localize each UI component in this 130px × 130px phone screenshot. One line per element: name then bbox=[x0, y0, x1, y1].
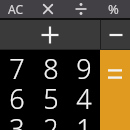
staticText: 2 bbox=[43, 110, 59, 130]
button[interactable]: Divide bbox=[64, 0, 97, 18]
button[interactable]: 2 bbox=[34, 110, 67, 130]
button[interactable]: Equals bbox=[100, 50, 130, 130]
staticText: 3 bbox=[9, 110, 25, 130]
staticText: 8 bbox=[43, 50, 59, 80]
button[interactable]: Plus bbox=[0, 20, 100, 49]
button[interactable]: 5 bbox=[34, 80, 67, 110]
button[interactable]: 7 bbox=[0, 50, 34, 80]
button[interactable]: 1 bbox=[67, 110, 100, 130]
button[interactable]: 6 bbox=[0, 80, 34, 110]
staticText: 1 bbox=[76, 110, 92, 130]
button[interactable]: 8 bbox=[34, 50, 67, 80]
staticText: 7 bbox=[9, 50, 25, 80]
button[interactable]: Percent bbox=[97, 0, 130, 18]
button[interactable]: Multiply bbox=[32, 0, 64, 18]
staticText: % bbox=[108, 0, 119, 18]
button[interactable]: 4 bbox=[67, 80, 100, 110]
staticText: AC bbox=[8, 1, 24, 17]
staticText: 9 bbox=[76, 50, 92, 80]
button[interactable]: 9 bbox=[67, 50, 100, 80]
button[interactable]: Minus bbox=[101, 20, 130, 49]
staticText: 5 bbox=[43, 80, 59, 110]
button[interactable]: AC bbox=[0, 0, 32, 18]
button[interactable]: 3 bbox=[0, 110, 34, 130]
staticText: 4 bbox=[76, 80, 92, 110]
staticText: 6 bbox=[9, 80, 25, 110]
